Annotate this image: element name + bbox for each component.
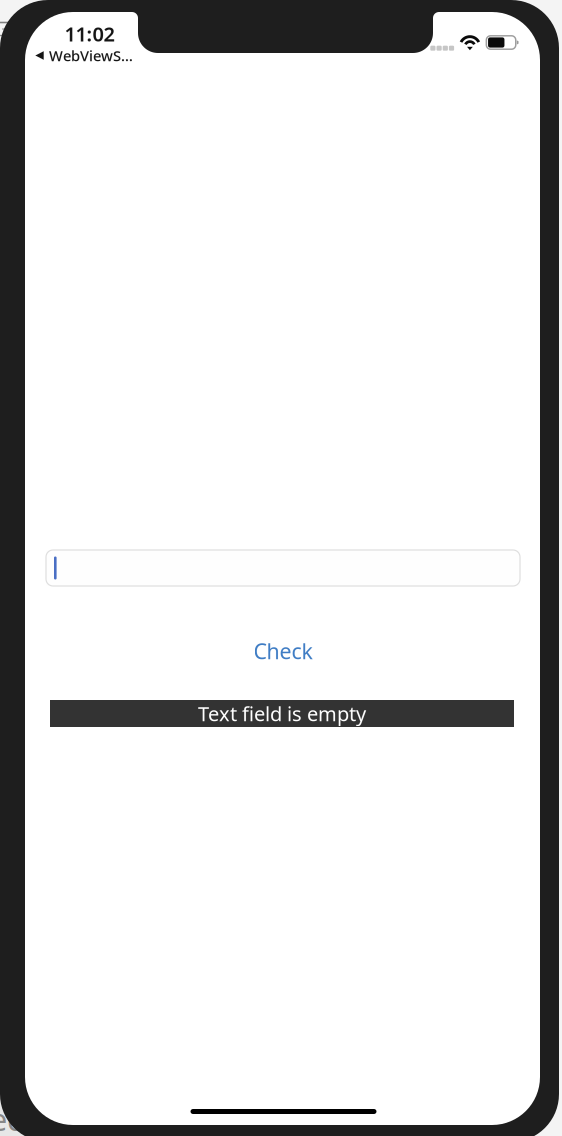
staticText: ed	[0, 1099, 26, 1136]
staticText: WebViewS…	[49, 46, 133, 65]
button[interactable]: Back to WebViewSample	[35, 48, 133, 62]
staticText: 11:02	[64, 20, 114, 47]
button[interactable]: Check	[46, 636, 520, 666]
button[interactable]: Text field	[46, 550, 520, 586]
staticText: Text field is empty	[198, 700, 366, 727]
staticText: Check	[253, 637, 312, 665]
